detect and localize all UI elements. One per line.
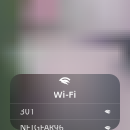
staticText: NETGEAR96 [20, 122, 64, 130]
staticText: 301 [20, 106, 35, 117]
button[interactable]: NETGEAR96 [10, 120, 120, 130]
staticText: Wi-Fi [53, 88, 76, 100]
button[interactable]: 301 [10, 104, 120, 119]
button[interactable]: Wi-Fi [10, 74, 120, 103]
